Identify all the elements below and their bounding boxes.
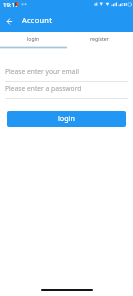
staticText: 19:17 xyxy=(3,1,19,9)
staticText: Please enter a password xyxy=(5,84,82,93)
staticText: Account xyxy=(22,15,53,25)
staticText: Please enter your email xyxy=(5,67,79,76)
button[interactable]: register xyxy=(66,32,133,46)
staticText: register xyxy=(90,35,109,42)
button[interactable]: Back xyxy=(0,12,19,31)
staticText: login xyxy=(27,35,40,42)
button[interactable]: login xyxy=(7,111,126,127)
staticText: login xyxy=(58,113,75,123)
button[interactable]: login xyxy=(0,32,66,46)
